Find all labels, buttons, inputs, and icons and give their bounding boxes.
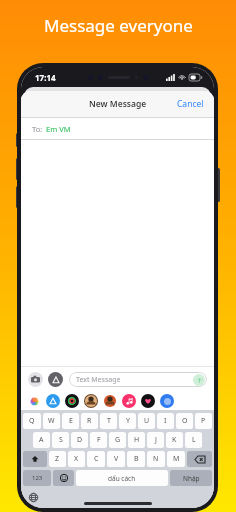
staticText: Message everyone <box>44 14 193 37</box>
staticText: X <box>74 454 79 464</box>
button[interactable]: App 2 <box>65 394 79 408</box>
button[interactable]: To: <box>21 118 214 139</box>
button[interactable]: K <box>166 432 183 448</box>
button[interactable]: C <box>87 451 105 467</box>
staticText: Y <box>126 416 130 426</box>
button[interactable]: J <box>147 432 164 448</box>
staticText: I <box>164 416 167 426</box>
button[interactable]: Change keyboard language <box>27 491 40 504</box>
staticText: R <box>87 416 92 426</box>
staticText: Q <box>29 416 35 426</box>
button[interactable]: D <box>71 432 88 448</box>
button[interactable]: Q <box>23 413 41 429</box>
staticText: T <box>107 416 111 426</box>
button[interactable]: H <box>128 432 145 448</box>
button[interactable]: App 6 <box>141 394 155 408</box>
button[interactable]: Cancel <box>167 93 214 115</box>
button[interactable]: dấu cách <box>76 470 168 486</box>
staticText: 123 <box>32 474 43 482</box>
staticText: F <box>97 435 101 445</box>
button[interactable]: App 0 <box>27 394 41 408</box>
staticText: S <box>59 435 63 445</box>
button[interactable]: U <box>138 413 155 429</box>
button[interactable]: Nhập <box>170 470 212 486</box>
staticText: A <box>39 435 44 445</box>
staticText: To: <box>32 124 43 134</box>
staticText: H <box>134 435 140 445</box>
button[interactable]: Text Message <box>69 372 207 387</box>
staticText: B <box>134 454 139 464</box>
button[interactable]: I <box>157 413 174 429</box>
staticText: J <box>155 435 157 445</box>
staticText: N <box>153 454 159 464</box>
staticText: G <box>115 435 121 445</box>
button[interactable]: X <box>68 451 85 467</box>
button[interactable]: B <box>127 451 145 467</box>
button[interactable]: F <box>90 432 107 448</box>
button[interactable]: R <box>81 413 98 429</box>
button[interactable]: E <box>62 413 79 429</box>
staticText: Cancel <box>177 98 204 110</box>
button[interactable]: App 7 <box>160 394 174 408</box>
button[interactable]: N <box>147 451 165 467</box>
button[interactable]: Shift <box>23 451 47 467</box>
button[interactable]: Y <box>119 413 136 429</box>
button[interactable]: App 5 <box>122 394 136 408</box>
button[interactable]: Send <box>193 374 205 386</box>
staticText: dấu cách <box>108 474 136 483</box>
staticText: Text Message <box>76 375 121 385</box>
button[interactable]: App 3 <box>84 394 98 408</box>
button[interactable]: App 1 <box>46 394 60 408</box>
button[interactable]: A <box>33 432 50 448</box>
button[interactable]: L <box>185 432 202 448</box>
staticText: New Message <box>89 98 147 110</box>
button[interactable]: Z <box>49 451 66 467</box>
button[interactable]: Camera <box>28 372 43 387</box>
staticText: P <box>201 416 206 426</box>
staticText: Nhập <box>183 474 200 483</box>
staticText: Z <box>55 454 60 464</box>
staticText: W <box>48 416 55 426</box>
staticText: K <box>172 435 177 445</box>
staticText: M <box>173 454 180 464</box>
button[interactable]: Emoji <box>53 470 74 486</box>
button[interactable]: T <box>100 413 117 429</box>
staticText: Em VM <box>46 124 71 134</box>
staticText: O <box>182 416 188 426</box>
button[interactable]: S <box>52 432 69 448</box>
button[interactable]: W <box>43 413 60 429</box>
button[interactable]: App 4 <box>103 394 117 408</box>
button[interactable]: O <box>176 413 193 429</box>
button[interactable]: App Store <box>48 372 63 387</box>
button[interactable]: 123 <box>23 470 51 486</box>
staticText: V <box>114 454 119 464</box>
button[interactable]: V <box>107 451 125 467</box>
staticText: L <box>192 435 196 445</box>
button[interactable]: Backspace <box>187 451 212 467</box>
staticText: U <box>144 416 150 426</box>
staticText: C <box>94 454 99 464</box>
staticText: 17:14 <box>35 72 56 83</box>
button[interactable]: M <box>167 451 185 467</box>
staticText: E <box>69 416 73 426</box>
button[interactable]: P <box>195 413 212 429</box>
button[interactable]: G <box>109 432 126 448</box>
staticText: D <box>77 435 83 445</box>
